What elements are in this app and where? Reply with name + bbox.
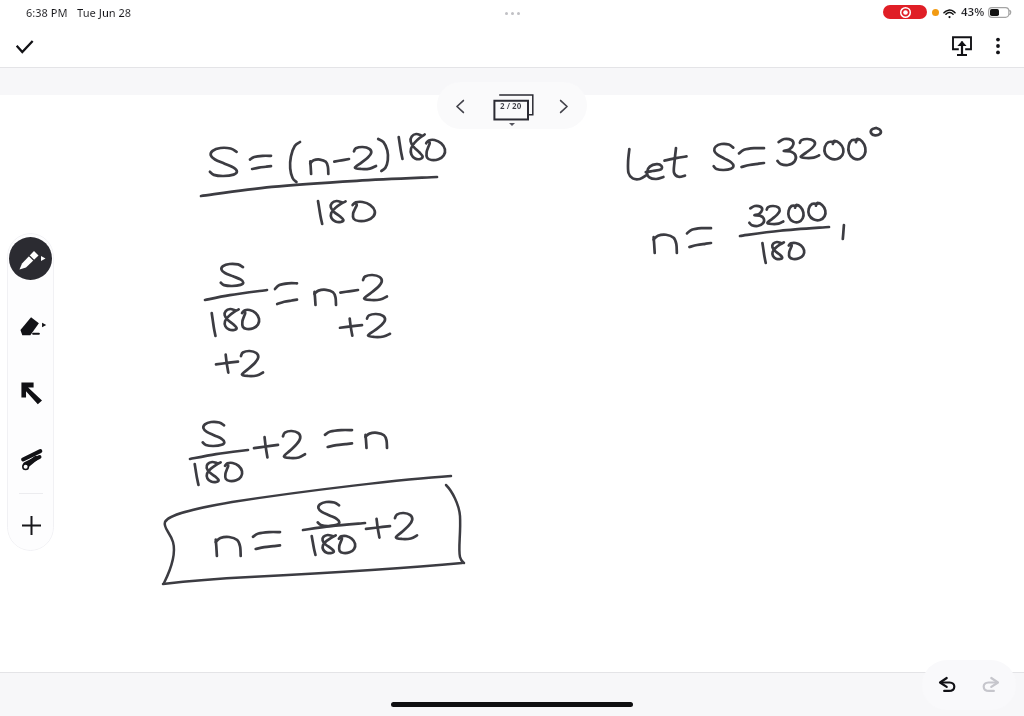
staticText: 2 / 20 (500, 100, 522, 111)
button[interactable]: Undo (933, 670, 963, 700)
staticText: 43% (961, 4, 985, 20)
button[interactable]: Pen (9, 237, 52, 280)
button[interactable]: Previous page (446, 92, 474, 120)
button[interactable]: Laser pointer (15, 443, 47, 475)
staticText: 6:38 PM (26, 5, 68, 20)
button[interactable]: Next page (550, 92, 578, 120)
button[interactable]: Add (15, 509, 47, 541)
button[interactable]: Eraser (15, 309, 47, 341)
button[interactable]: Select (15, 376, 47, 408)
staticText: Tue Jun 28 (77, 5, 132, 20)
button[interactable]: Done (7, 29, 41, 63)
button[interactable]: More options (980, 28, 1016, 64)
button[interactable]: Export (944, 28, 980, 64)
button[interactable]: Redo (975, 670, 1005, 700)
